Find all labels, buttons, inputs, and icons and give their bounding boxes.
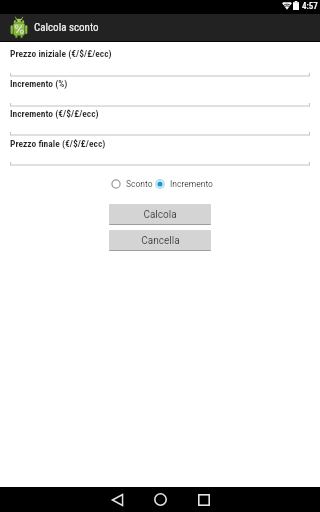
button[interactable]: Calcola bbox=[109, 204, 211, 225]
staticText: Sconto bbox=[126, 179, 153, 189]
button[interactable]: Cancella bbox=[109, 230, 211, 251]
staticText: Incremento bbox=[170, 179, 213, 189]
button[interactable]: Home bbox=[139, 487, 182, 512]
button[interactable]: Incremento (€/$/£/ecc) bbox=[0, 103, 320, 138]
button[interactable]: Incremento (%) bbox=[0, 73, 320, 108]
button[interactable]: Sconto bbox=[111, 177, 153, 191]
button[interactable]: Recents bbox=[182, 487, 225, 512]
staticText: Calcola sconto bbox=[34, 21, 99, 34]
staticText: Incremento (€/$/£/ecc) bbox=[10, 108, 99, 119]
button[interactable]: Incremento bbox=[155, 177, 213, 191]
staticText: Calcola bbox=[143, 209, 177, 221]
staticText: Prezzo iniziale (€/$/£/ecc) bbox=[10, 48, 112, 59]
button[interactable]: Prezzo iniziale (€/$/£/ecc) bbox=[0, 43, 320, 78]
staticText: Prezzo finale (€/$/£/ecc) bbox=[10, 138, 106, 149]
button[interactable]: Prezzo finale (€/$/£/ecc) bbox=[0, 133, 320, 168]
button[interactable]: Back bbox=[96, 487, 139, 512]
staticText: 4:57 bbox=[302, 1, 318, 12]
staticText: Cancella bbox=[141, 235, 180, 247]
staticText: Incremento (%) bbox=[10, 78, 68, 89]
